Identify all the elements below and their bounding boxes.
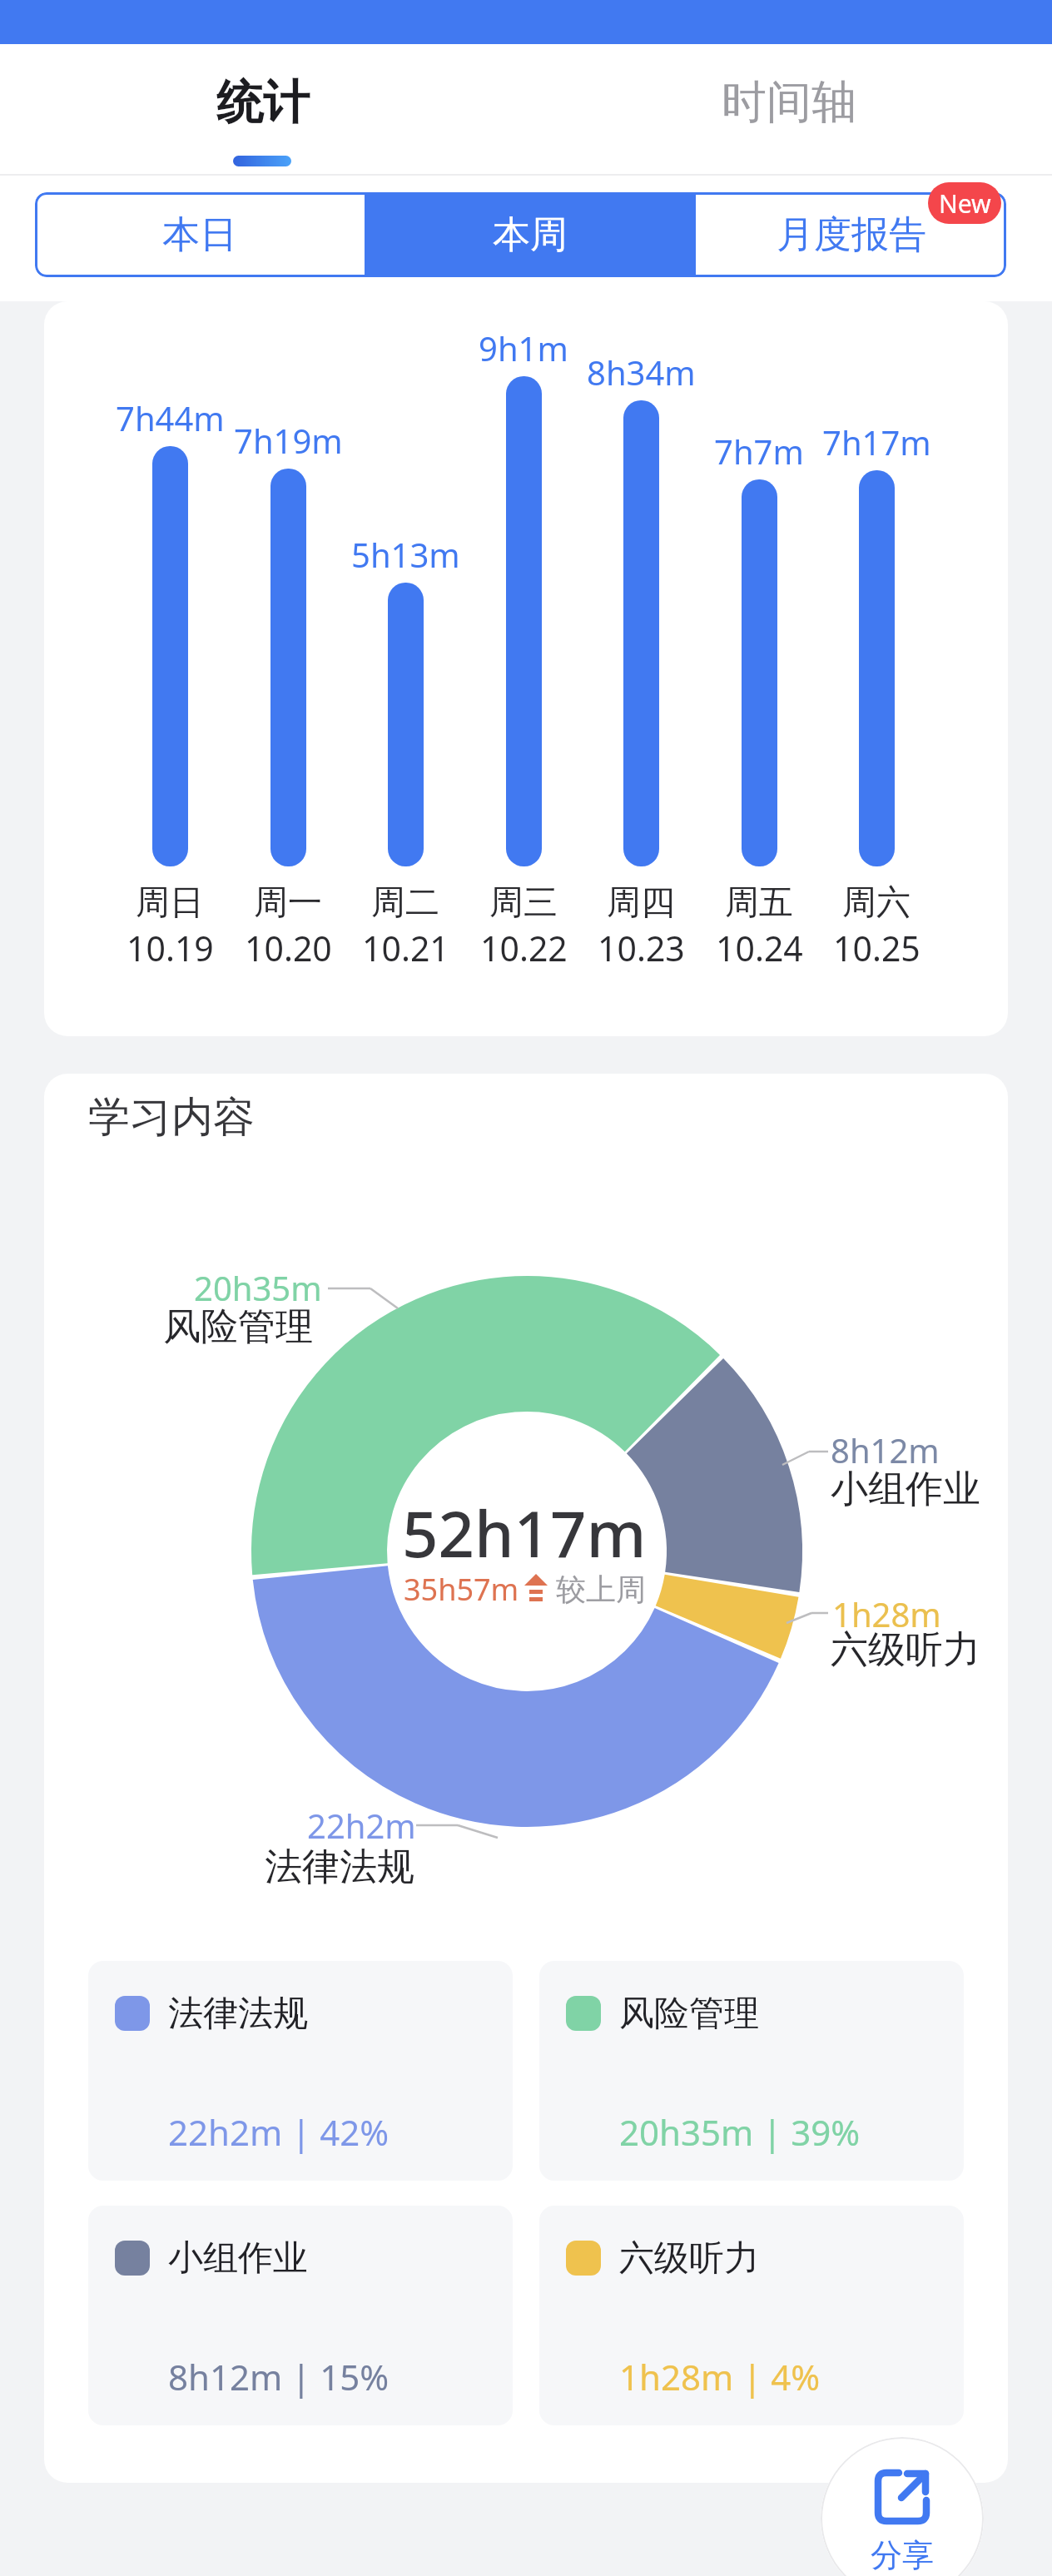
staticText: 学习内容 [88,1091,255,1144]
staticText: 小组作业 [831,1466,980,1513]
staticText: 法律法规 [265,1844,414,1891]
staticText: 10.24 [716,925,803,971]
staticText: 22h2m [307,1803,416,1848]
staticText: 8h34m [587,350,696,395]
staticText: 35h57m [404,1569,519,1610]
staticText: 小组作业 [168,2236,308,2281]
staticText: 周三 [489,881,558,925]
staticText: 周日 [136,881,204,925]
staticText: 1h28m | 4% [619,2353,821,2400]
staticText: 10.22 [480,925,568,971]
staticText: 月度报告 [777,211,926,259]
staticText: 周一 [254,881,322,925]
staticText: 7h44m [116,395,225,440]
staticText: 法律法规 [168,1992,308,2036]
staticText: 10.20 [245,925,332,971]
button[interactable] [88,1961,513,2181]
staticText: 9h1m [479,325,568,370]
staticText: 7h19m [234,418,343,463]
staticText: 时间轴 [722,74,856,131]
staticText: 20h35m [194,1265,322,1310]
staticText: 风险管理 [619,1992,759,2036]
staticText: 较上周 [556,1571,646,1608]
button[interactable]: 月度报告 [696,192,1006,277]
staticText: 8h12m [831,1427,940,1472]
staticText: 统计 [216,73,310,132]
button[interactable] [539,1961,964,2181]
staticText: 10.23 [598,925,685,971]
button[interactable]: 统计 [97,52,429,152]
staticText: 1h28m [832,1591,941,1636]
staticText: 8h12m | 15% [168,2353,390,2400]
button[interactable]: 本日 [35,192,365,277]
staticText: 周二 [371,881,439,925]
staticText: New [939,186,991,221]
staticText: 本周 [493,211,568,259]
staticText: 分享 [871,2535,934,2572]
staticText: 六级听力 [619,2236,759,2281]
button[interactable]: 分享 [821,2437,984,2576]
button[interactable]: 时间轴 [623,52,955,152]
staticText: 风险管理 [163,1303,313,1351]
button[interactable]: 本周 [365,192,696,277]
staticText: 7h7m [714,429,804,474]
staticText: 10.19 [127,925,214,971]
staticText: 周六 [842,881,911,925]
button[interactable] [88,2206,513,2425]
staticText: 22h2m | 42% [168,2108,390,2156]
staticText: 5h13m [351,532,460,577]
staticText: 六级听力 [831,1626,980,1674]
button[interactable] [539,2206,964,2425]
staticText: 7h17m [822,419,931,464]
staticText: 52h17m [402,1490,647,1573]
staticText: 10.25 [833,925,920,971]
staticText: 20h35m | 39% [619,2108,861,2156]
staticText: 本日 [162,211,237,259]
staticText: 10.21 [362,925,449,971]
staticText: 周四 [607,881,675,925]
staticText: 周五 [725,881,793,925]
